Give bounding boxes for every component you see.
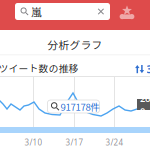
staticText: 3/10 [24, 137, 42, 148]
staticText: 嵐 [31, 4, 42, 19]
button[interactable]: トレンド [118, 4, 136, 21]
staticText: 260 [140, 92, 150, 117]
staticText: ツイート数の推移 [0, 61, 78, 75]
staticText: 3 [146, 62, 150, 76]
staticText: 917178件 [61, 99, 101, 113]
staticText: 分析グラフ [47, 37, 102, 52]
staticText: 3/17 [65, 137, 83, 148]
staticText: 3/24 [105, 137, 123, 148]
button[interactable]: 検索 [15, 3, 110, 20]
button[interactable]: 並び替え [135, 62, 150, 76]
